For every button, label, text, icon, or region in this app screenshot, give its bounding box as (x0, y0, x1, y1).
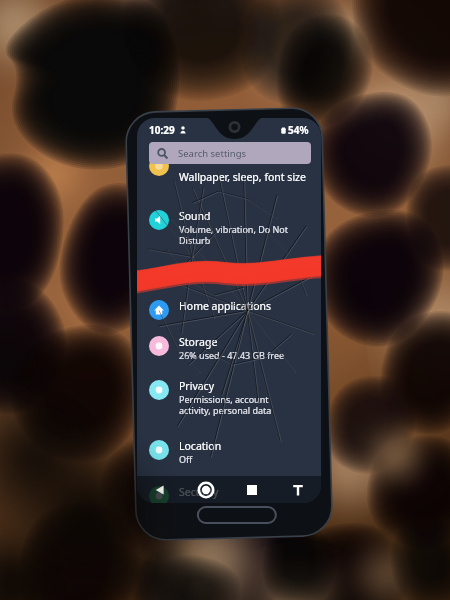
staticText: Wallpaper, sleep, font size (179, 170, 306, 184)
button[interactable]: Home (183, 476, 229, 503)
button[interactable]: Recents (229, 476, 275, 503)
button[interactable]: Home applications (137, 299, 321, 319)
staticText: Security (179, 485, 219, 499)
staticText: Home applications (179, 299, 272, 313)
staticText: Privacy (179, 379, 215, 393)
staticText: Search settings (178, 147, 247, 160)
button[interactable]: Sound (137, 209, 321, 247)
button[interactable]: Storage (137, 335, 321, 361)
staticText: Volume, vibration, Do Not Disturb (179, 223, 289, 247)
staticText: 54% (288, 123, 309, 137)
button[interactable]: Location (137, 439, 321, 465)
button[interactable]: Privacy (137, 379, 321, 417)
staticText: 26% used - 47.43 GB free (179, 349, 285, 361)
staticText: Off (179, 453, 193, 465)
staticText: 10:29 (149, 123, 175, 137)
button[interactable]: Security (137, 485, 321, 503)
button[interactable]: Accessibility (275, 476, 321, 503)
staticText: Location (179, 439, 222, 453)
staticText: Permissions, account activity, personal … (179, 393, 272, 417)
button[interactable]: Back (137, 476, 183, 503)
staticText: Storage (179, 335, 218, 349)
button[interactable]: Wallpaper, sleep, font size (137, 170, 321, 190)
button[interactable]: Search settings (149, 142, 311, 164)
staticText: Sound (179, 209, 211, 223)
